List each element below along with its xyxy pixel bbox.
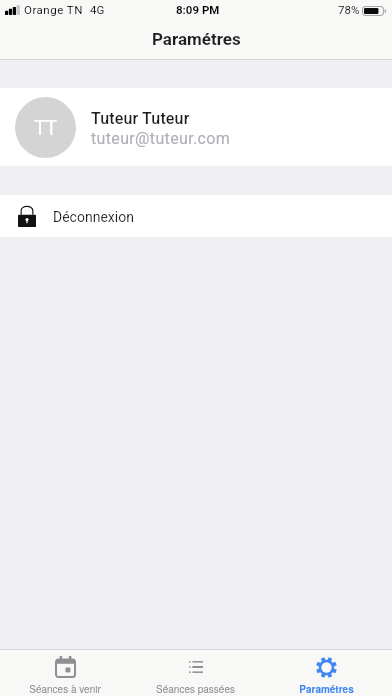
- staticText: tuteur@tuteur.com: [91, 129, 231, 148]
- staticText: 8:09 PM: [176, 3, 220, 16]
- staticText: TT: [34, 116, 57, 139]
- staticText: 78%: [338, 3, 360, 16]
- button[interactable]: TT: [0, 88, 392, 166]
- button[interactable]: Past sessions: [130, 650, 261, 696]
- staticText: Séances à venir: [29, 682, 101, 696]
- other: Log out: [18, 205, 36, 227]
- button[interactable]: Log out: [0, 195, 392, 237]
- button[interactable]: Settings: [261, 650, 392, 696]
- button[interactable]: Upcoming sessions: [0, 650, 130, 696]
- staticText: Tuteur Tuteur: [91, 109, 190, 128]
- staticText: Paramétres: [152, 29, 241, 49]
- staticText: 4G: [90, 3, 105, 16]
- staticText: Déconnexion: [53, 209, 134, 225]
- staticText: Orange TN: [24, 3, 83, 16]
- staticText: Paramétres: [299, 682, 354, 696]
- staticText: Séances passées: [156, 682, 235, 696]
